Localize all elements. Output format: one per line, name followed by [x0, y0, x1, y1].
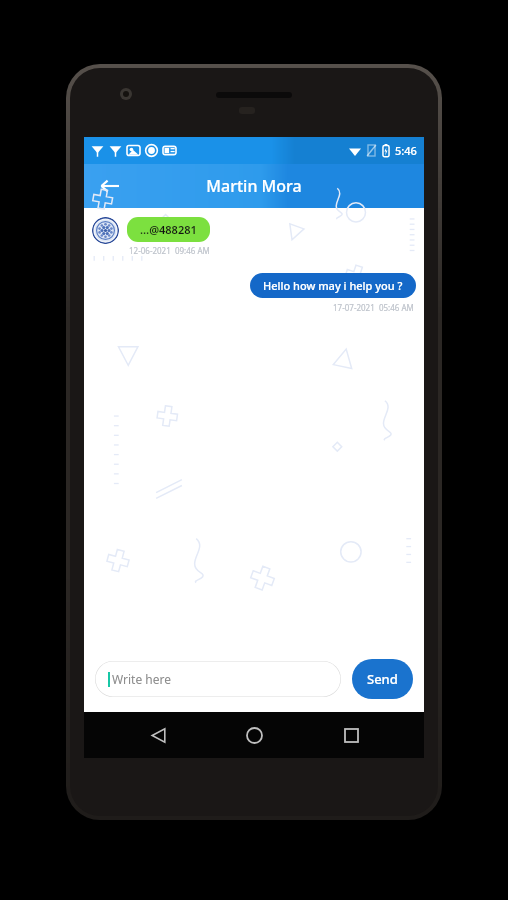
button[interactable]: Hello how may i help you ?: [250, 273, 416, 298]
button[interactable]: Write here: [95, 661, 341, 697]
button[interactable]: Back: [92, 168, 128, 204]
staticText: 5:46: [395, 143, 417, 158]
staticText: Martin Mora: [206, 175, 302, 197]
button[interactable]: Contact avatar: [92, 217, 119, 244]
staticText: Send: [367, 670, 398, 688]
button[interactable]: Recents: [328, 712, 374, 758]
button[interactable]: …@488281: [127, 217, 210, 242]
staticText: Write here: [112, 671, 171, 687]
staticText: …@488281: [140, 222, 197, 237]
staticText: 17-07-2021 05:46 AM: [333, 302, 414, 313]
button[interactable]: Send: [352, 659, 413, 699]
staticText: 12-06-2021 09:46 AM: [129, 245, 210, 256]
button[interactable]: Back: [135, 712, 181, 758]
button[interactable]: Home: [231, 712, 277, 758]
staticText: Hello how may i help you ?: [263, 278, 403, 293]
